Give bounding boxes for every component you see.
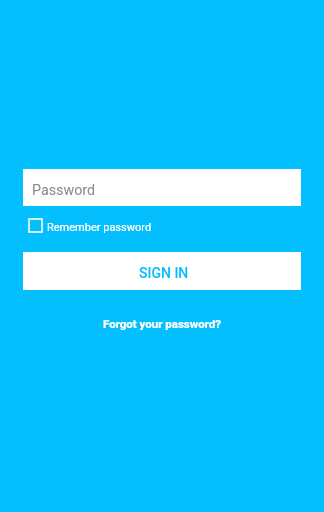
staticText: SIGN IN: [139, 265, 189, 281]
button[interactable]: Remember password: [28, 217, 152, 234]
staticText: Remember password: [47, 221, 152, 234]
button[interactable]: Password input field: [23, 169, 301, 206]
staticText: Forgot your password?: [103, 317, 221, 330]
button[interactable]: SIGN IN: [23, 252, 301, 290]
staticText: Password: [32, 182, 96, 199]
button[interactable]: Forgot your password?: [91, 311, 233, 336]
